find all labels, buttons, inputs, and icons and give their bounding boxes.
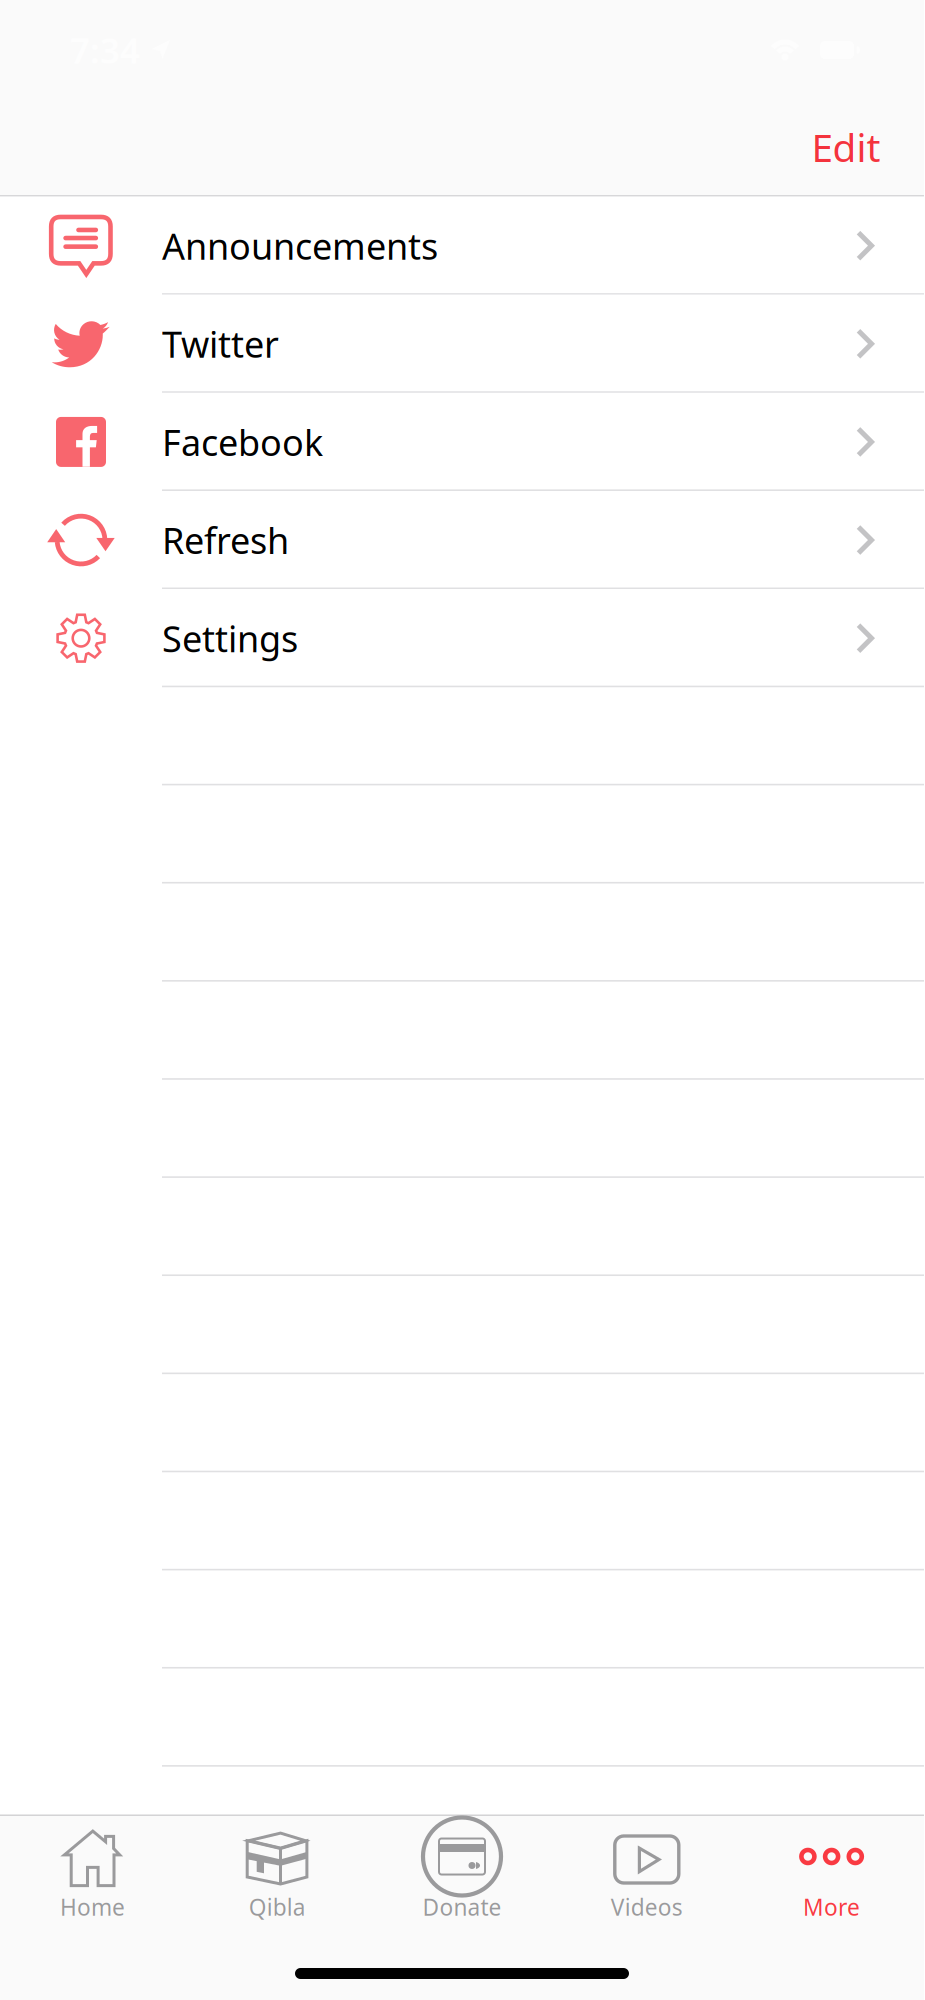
button[interactable]: Announcements <box>0 197 924 295</box>
button[interactable]: More <box>739 1816 924 1938</box>
button[interactable]: Facebook <box>0 393 924 491</box>
button[interactable]: Donate <box>370 1816 554 1938</box>
staticText: Twitter <box>162 320 279 368</box>
button[interactable]: Videos <box>554 1816 739 1938</box>
staticText: Refresh <box>162 516 289 564</box>
staticText: Edit <box>811 121 880 173</box>
staticText: Announcements <box>162 222 438 270</box>
button[interactable]: Edit <box>796 108 896 186</box>
staticText: More <box>803 1892 860 1922</box>
staticText: Donate <box>422 1892 501 1922</box>
staticText: Home <box>60 1892 125 1922</box>
staticText: Facebook <box>162 418 323 466</box>
button[interactable]: Home <box>0 1816 185 1938</box>
staticText: Videos <box>611 1892 683 1922</box>
button[interactable]: Settings <box>0 589 924 687</box>
staticText: Settings <box>162 614 298 662</box>
button[interactable]: Refresh <box>0 491 924 589</box>
staticText: Qibla <box>249 1892 306 1922</box>
button[interactable]: Twitter <box>0 295 924 393</box>
button[interactable]: Qibla <box>185 1816 370 1938</box>
